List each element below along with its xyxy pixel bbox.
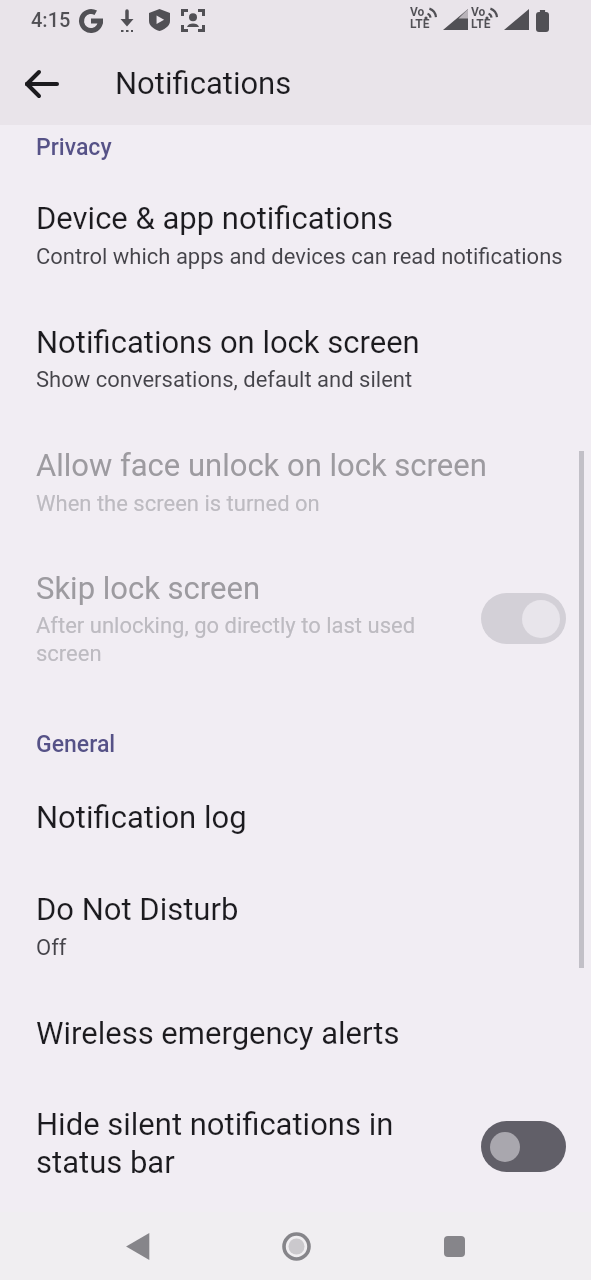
button[interactable]	[0, 992, 591, 1082]
staticText: Do Not Disturb	[36, 891, 239, 927]
staticText: Hide silent notifications in status bar	[36, 1106, 394, 1181]
staticText: Skip lock screen	[36, 570, 261, 606]
staticText: Vo	[410, 5, 425, 19]
staticText: When the screen is turned on	[36, 491, 320, 517]
staticText: LTE	[471, 17, 491, 31]
button[interactable]	[0, 170, 591, 300]
staticText: Off	[36, 935, 67, 961]
staticText: Device & app notifications	[36, 200, 394, 236]
staticText: General	[36, 731, 116, 758]
button[interactable]	[0, 300, 591, 420]
staticText: Notifications	[115, 65, 292, 101]
staticText: Notification log	[36, 799, 247, 835]
staticText: LTE	[410, 17, 430, 31]
button[interactable]	[404, 1212, 504, 1280]
button[interactable]	[246, 1212, 346, 1280]
staticText: Control which apps and devices can read …	[36, 244, 563, 270]
staticText: Show conversations, default and silent	[36, 367, 413, 393]
button[interactable]	[88, 1212, 188, 1280]
button[interactable]	[0, 425, 591, 545]
staticText: Privacy	[36, 134, 112, 161]
staticText: Wireless emergency alerts	[36, 1015, 400, 1051]
staticText: After unlocking, go directly to last use…	[36, 613, 416, 667]
staticText: Vo	[471, 5, 486, 19]
staticText: 4:15	[31, 8, 71, 31]
button[interactable]	[481, 1121, 566, 1172]
button[interactable]	[0, 775, 591, 865]
staticText: Notifications on lock screen	[36, 324, 420, 360]
button[interactable]	[0, 550, 591, 700]
staticText: Allow face unlock on lock screen	[36, 447, 487, 483]
button[interactable]	[0, 868, 591, 988]
button[interactable]	[0, 1082, 591, 1212]
button[interactable]	[20, 62, 64, 106]
button[interactable]	[481, 593, 566, 644]
